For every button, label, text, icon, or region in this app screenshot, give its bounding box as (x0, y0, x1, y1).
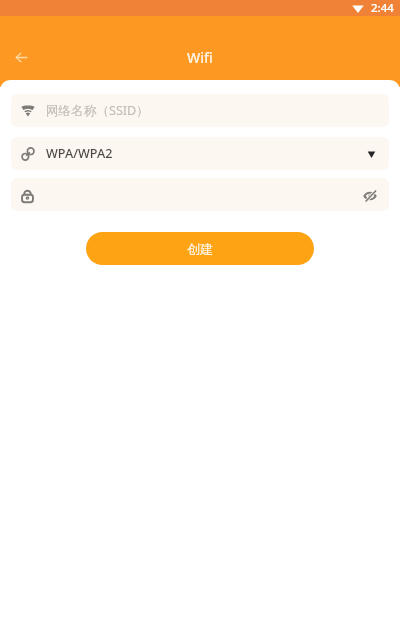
staticText: 创建 (187, 241, 213, 257)
button[interactable]: Show password (360, 186, 380, 206)
button[interactable]: Back (5, 41, 37, 73)
button[interactable]: WPA/WPA2 (11, 137, 389, 170)
staticText: WPA/WPA2 (46, 145, 113, 162)
button[interactable]: 网络名称（SSID） (11, 94, 389, 127)
staticText: 网络名称（SSID） (46, 102, 149, 119)
staticText: 2:44 (371, 0, 394, 16)
button[interactable]: Show password (11, 178, 389, 211)
staticText: Wifi (187, 48, 213, 67)
button[interactable]: 创建 (86, 232, 314, 265)
button[interactable]: Select security type (362, 145, 380, 163)
